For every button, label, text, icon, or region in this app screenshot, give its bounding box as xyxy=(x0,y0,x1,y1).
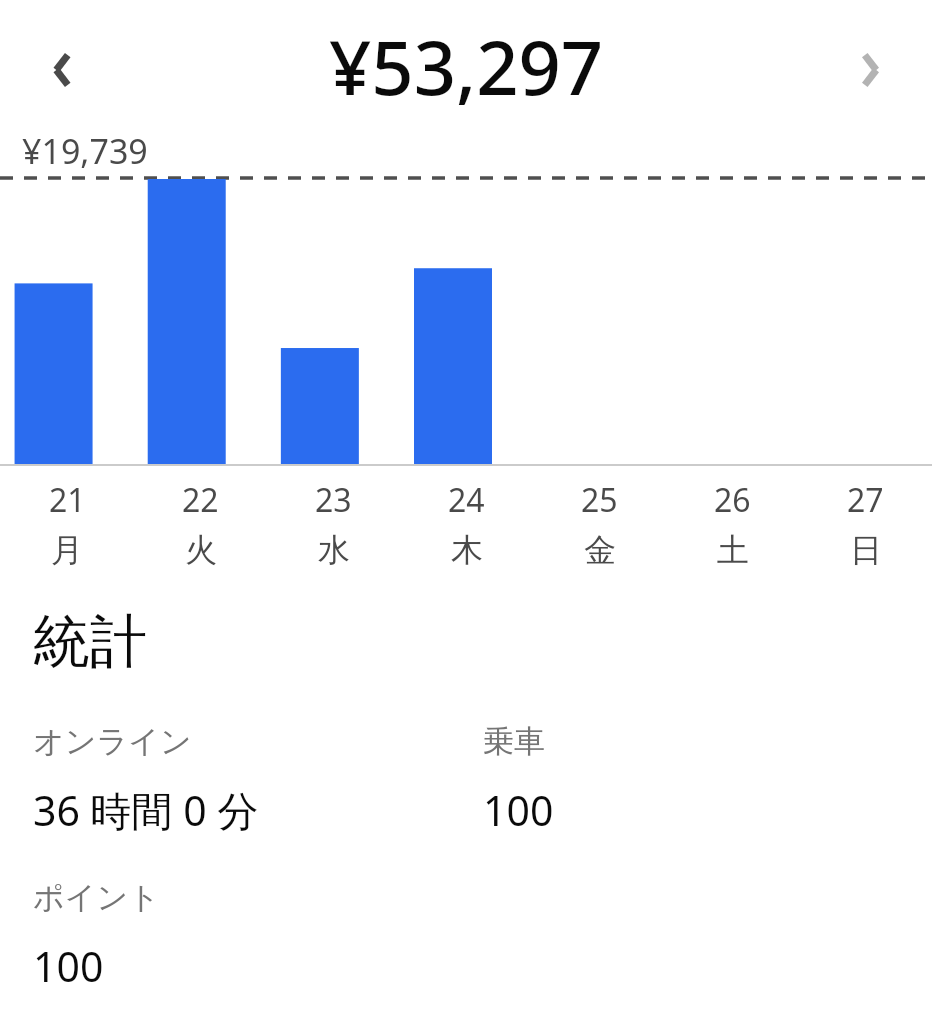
staticText: 統計 xyxy=(33,606,147,678)
staticText: 25 xyxy=(581,478,618,522)
staticText: 土 xyxy=(717,530,749,570)
staticText: ¥19,739 xyxy=(22,128,148,174)
staticText: ポイント xyxy=(33,878,160,917)
staticText: 月 xyxy=(51,530,83,570)
staticText: オンライン xyxy=(33,722,192,761)
staticText: 22 xyxy=(182,478,219,522)
button[interactable]: Previous week xyxy=(26,42,98,98)
button[interactable]: 26 xyxy=(666,478,799,570)
staticText: 21 xyxy=(49,478,86,522)
button[interactable]: 27 xyxy=(799,478,932,570)
staticText: 100 xyxy=(483,782,554,838)
staticText: 24 xyxy=(448,478,485,522)
staticText: 金 xyxy=(584,530,616,570)
button[interactable]: 21 xyxy=(0,478,134,570)
button[interactable]: 23 xyxy=(267,478,400,570)
staticText: 乗車 xyxy=(483,722,545,761)
staticText: 日 xyxy=(850,530,882,570)
staticText: 27 xyxy=(847,478,884,522)
staticText: 36 時間 0 分 xyxy=(33,782,259,838)
button[interactable]: Next week xyxy=(834,42,906,98)
staticText: 木 xyxy=(451,530,483,570)
staticText: 100 xyxy=(33,938,104,994)
staticText: 26 xyxy=(714,478,751,522)
staticText: 23 xyxy=(315,478,352,522)
staticText: 火 xyxy=(185,530,217,570)
button[interactable]: 22 xyxy=(134,478,267,570)
button[interactable]: 24 xyxy=(400,478,533,570)
button[interactable]: 25 xyxy=(533,478,666,570)
staticText: ¥53,297 xyxy=(329,16,604,117)
staticText: 水 xyxy=(318,530,350,570)
